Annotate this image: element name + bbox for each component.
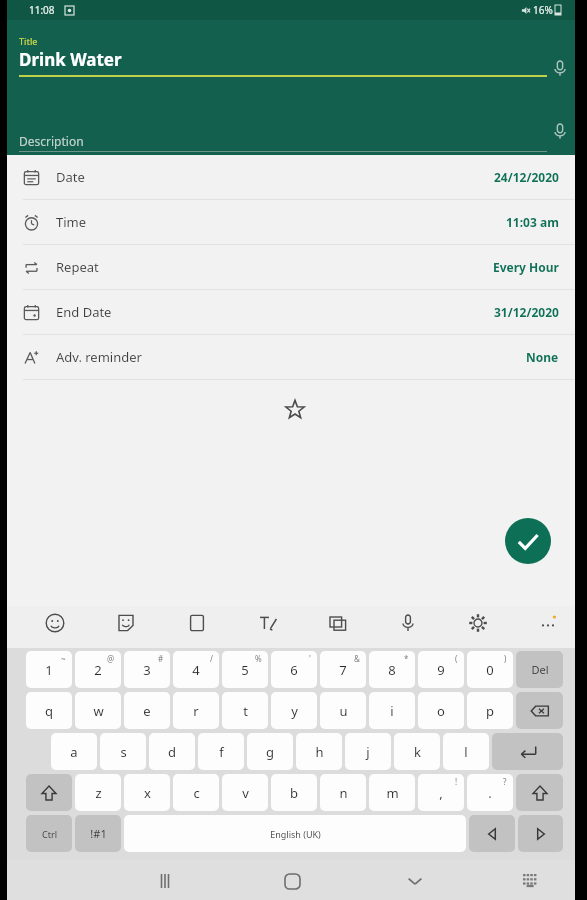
staticText: m xyxy=(386,784,399,802)
button[interactable]: Settings xyxy=(461,606,495,640)
staticText: r xyxy=(193,702,199,720)
button[interactable]: . xyxy=(467,774,513,811)
button[interactable]: Home xyxy=(279,868,305,894)
staticText: 7 xyxy=(339,661,347,679)
button[interactable]: End Date xyxy=(7,290,575,335)
button[interactable]: m xyxy=(369,774,415,811)
button[interactable]: Save reminder xyxy=(505,518,551,564)
button[interactable]: b xyxy=(271,774,317,811)
staticText: d xyxy=(168,743,176,761)
button[interactable]: u xyxy=(320,692,366,729)
button[interactable]: 1 xyxy=(26,651,72,688)
button[interactable]: Time xyxy=(7,200,575,245)
staticText: f xyxy=(219,743,224,761)
button[interactable]: h xyxy=(296,733,342,770)
button[interactable]: Change keyboard xyxy=(517,868,543,894)
button[interactable]: Del xyxy=(516,651,563,688)
staticText: n xyxy=(339,784,348,802)
button[interactable]: 0 xyxy=(467,651,513,688)
button[interactable]: Hide keyboard xyxy=(402,868,428,894)
button[interactable]: c xyxy=(173,774,219,811)
button[interactable]: , xyxy=(418,774,464,811)
staticText: Del xyxy=(531,662,549,677)
staticText: l xyxy=(464,743,468,761)
button[interactable]: Voice typing xyxy=(391,606,425,640)
button[interactable]: 5 xyxy=(222,651,268,688)
button[interactable]: Emoji xyxy=(38,606,72,640)
staticText: Title xyxy=(19,35,38,47)
staticText: 11:08 xyxy=(29,3,55,17)
button[interactable]: Voice input xyxy=(549,120,571,142)
button[interactable]: Shift xyxy=(516,774,563,811)
staticText: g xyxy=(266,743,274,761)
staticText: ) xyxy=(504,653,507,664)
staticText: b xyxy=(290,784,298,802)
button[interactable]: Move cursor right xyxy=(518,815,563,852)
staticText: i xyxy=(390,702,394,720)
button[interactable]: 8 xyxy=(369,651,415,688)
button[interactable]: e xyxy=(124,692,170,729)
button[interactable]: a xyxy=(51,733,97,770)
button[interactable]: Handwriting xyxy=(251,606,285,640)
button[interactable]: 2 xyxy=(75,651,121,688)
button[interactable]: k xyxy=(394,733,440,770)
button[interactable]: Move cursor left xyxy=(469,815,515,852)
staticText: c xyxy=(193,784,200,802)
staticText: 1 xyxy=(45,661,53,679)
button[interactable]: v xyxy=(222,774,268,811)
button[interactable]: !#1 xyxy=(75,815,121,852)
button[interactable]: English (UK) xyxy=(124,815,466,852)
staticText: e xyxy=(143,702,151,720)
staticText: p xyxy=(486,702,494,720)
staticText: Description xyxy=(19,133,84,149)
button[interactable]: Ctrl xyxy=(26,815,72,852)
staticText: Adv. reminder xyxy=(56,348,142,366)
button[interactable]: d xyxy=(149,733,195,770)
staticText: 11:03 am xyxy=(506,214,559,230)
staticText: None xyxy=(526,349,559,365)
staticText: 16% xyxy=(533,3,553,17)
staticText: z xyxy=(95,784,102,802)
button[interactable]: o xyxy=(418,692,464,729)
button[interactable]: p xyxy=(467,692,513,729)
button[interactable]: s xyxy=(100,733,146,770)
button[interactable]: Adv. reminder xyxy=(7,335,575,380)
button[interactable]: 6 xyxy=(271,651,317,688)
button[interactable]: x xyxy=(124,774,170,811)
button[interactable]: Repeat xyxy=(7,245,575,290)
button[interactable]: z xyxy=(75,774,121,811)
button[interactable]: n xyxy=(320,774,366,811)
button[interactable]: q xyxy=(26,692,72,729)
button[interactable]: y xyxy=(271,692,317,729)
staticText: 9 xyxy=(437,661,445,679)
button[interactable]: f xyxy=(198,733,244,770)
button[interactable]: 7 xyxy=(320,651,366,688)
button[interactable]: j xyxy=(345,733,391,770)
staticText: 4 xyxy=(192,661,200,679)
staticText: ( xyxy=(455,653,458,664)
button[interactable]: 4 xyxy=(173,651,219,688)
button[interactable]: Shift xyxy=(26,774,72,811)
button[interactable]: GIF xyxy=(180,606,214,640)
button[interactable]: g xyxy=(247,733,293,770)
button[interactable]: 3 xyxy=(124,651,170,688)
staticText: s xyxy=(120,743,127,761)
button[interactable]: w xyxy=(75,692,121,729)
button[interactable]: t xyxy=(222,692,268,729)
button[interactable]: r xyxy=(173,692,219,729)
button[interactable]: i xyxy=(369,692,415,729)
staticText: Every Hour xyxy=(493,259,559,275)
button[interactable]: Recent apps xyxy=(152,868,178,894)
button[interactable]: Backspace xyxy=(516,692,563,729)
button[interactable]: More options xyxy=(531,606,565,640)
button[interactable]: Enter xyxy=(492,733,563,770)
button[interactable]: Clipboard xyxy=(321,606,355,640)
staticText: Time xyxy=(56,213,87,231)
button[interactable]: Voice input xyxy=(549,57,571,79)
button[interactable]: Stickers xyxy=(109,606,143,640)
button[interactable]: Date xyxy=(7,155,575,200)
button[interactable]: l xyxy=(443,733,489,770)
staticText: 5 xyxy=(241,661,249,679)
staticText: Ctrl xyxy=(42,828,57,840)
button[interactable]: 9 xyxy=(418,651,464,688)
